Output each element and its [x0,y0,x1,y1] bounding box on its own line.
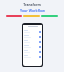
button[interactable] [24,34,41,39]
button[interactable]: Smart [23,15,40,17]
staticText: Your Workflow [20,8,45,13]
button[interactable] [24,29,41,34]
button[interactable] [24,44,41,49]
button[interactable] [24,39,41,44]
button[interactable]: Fast [6,15,22,17]
button[interactable]: Easy [41,15,58,17]
button[interactable] [24,54,41,59]
staticText: Transform [23,2,41,7]
button[interactable] [24,49,41,54]
